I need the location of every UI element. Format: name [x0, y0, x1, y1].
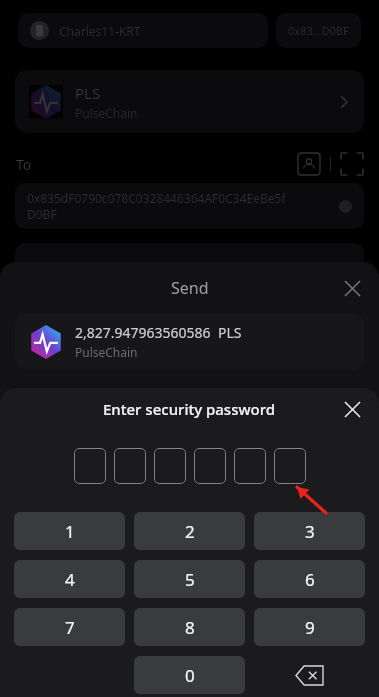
button[interactable]: 0x83...D0BF — [276, 13, 361, 48]
staticText: Charles11-KRT — [59, 23, 141, 39]
staticText: 5 — [185, 568, 195, 591]
button[interactable] — [154, 448, 186, 484]
button[interactable]: Scan QR code — [341, 153, 363, 175]
button[interactable] — [194, 448, 226, 484]
staticText: 8 — [185, 616, 195, 639]
button[interactable]: Close send — [337, 273, 367, 303]
button[interactable]: 2 — [134, 512, 245, 550]
staticText: 2,827.947963560586 — [75, 323, 211, 342]
button[interactable]: 0 — [134, 656, 245, 694]
button[interactable]: 6 — [254, 560, 365, 598]
staticText: Enter security password — [103, 399, 276, 419]
staticText: PLS — [218, 323, 242, 342]
button[interactable]: 0x835dF0790c078C0328446364AF0C34EeBe5f D… — [15, 183, 364, 229]
button[interactable] — [114, 448, 146, 484]
staticText: 0x83...D0BF — [288, 23, 349, 38]
staticText: 0x835dF0790c078C0328446364AF0C34EeBe5f D… — [27, 190, 339, 222]
staticText: PulseChain — [75, 105, 138, 121]
button[interactable]: Charles11-KRT — [18, 13, 268, 48]
staticText: 7 — [65, 616, 75, 639]
staticText: 1 — [65, 520, 75, 543]
button[interactable]: 7 — [14, 608, 125, 646]
staticText: 3 — [305, 520, 315, 543]
staticText: Send — [171, 277, 209, 299]
staticText: 6 — [305, 568, 315, 591]
button[interactable]: 1 — [14, 512, 125, 550]
button[interactable]: Close password — [337, 394, 367, 424]
staticText: To — [16, 155, 32, 174]
staticText: PLS — [75, 83, 101, 103]
button[interactable]: 3 — [254, 512, 365, 550]
button[interactable]: 9 — [254, 608, 365, 646]
staticText: 2 — [185, 520, 195, 543]
staticText: 0 — [185, 664, 195, 687]
button[interactable] — [74, 448, 106, 484]
staticText: 9 — [305, 616, 315, 639]
button[interactable] — [274, 448, 306, 484]
button[interactable]: Backspace — [254, 656, 365, 694]
staticText: PulseChain — [75, 344, 138, 360]
button[interactable]: 8 — [134, 608, 245, 646]
button[interactable] — [234, 448, 266, 484]
button[interactable]: 5 — [134, 560, 245, 598]
button[interactable]: 2,827.947963560586 — [15, 314, 364, 369]
button[interactable]: Contacts — [298, 153, 320, 175]
button[interactable]: PLS — [15, 70, 364, 133]
button[interactable]: 4 — [14, 560, 125, 598]
staticText: 4 — [65, 568, 75, 591]
